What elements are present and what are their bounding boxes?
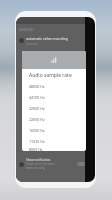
button[interactable]: Show notification [19, 156, 85, 172]
button[interactable]: 22050 Hz [22, 114, 86, 125]
staticText: 44100 Hz [29, 95, 45, 100]
staticText: ADVANCED [19, 28, 34, 32]
button[interactable]: 32000 Hz [22, 103, 86, 114]
staticText: 48000 Hz [29, 84, 45, 89]
staticText: Licensed [26, 42, 38, 46]
staticText: 8000 Hz [29, 147, 43, 151]
staticText: Show notification [26, 158, 51, 162]
button[interactable]: 16000 Hz [22, 125, 86, 136]
button[interactable]: 8000 Hz [22, 147, 86, 151]
staticText: 22050 Hz [29, 117, 45, 122]
button[interactable]: 48000 Hz [22, 81, 86, 92]
button[interactable]: 11025 Hz [22, 136, 86, 147]
staticText: when recording [26, 166, 46, 170]
staticText: 11025 Hz [29, 139, 45, 144]
staticText: Enable to see the status [26, 162, 56, 166]
button[interactable]: 44100 Hz [22, 92, 86, 103]
staticText: Audio sample rate [29, 72, 72, 79]
staticText: automatic video recording [26, 36, 68, 41]
staticText: 32000 Hz [29, 106, 45, 111]
staticText: 16000 Hz [29, 128, 45, 133]
